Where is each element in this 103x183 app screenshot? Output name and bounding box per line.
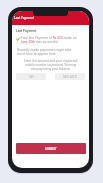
staticText: PAY LATER: [63, 75, 77, 79]
staticText: mobile number to proceed. You may: [25, 63, 77, 67]
button[interactable]: SUBMIT: [16, 143, 86, 154]
staticText: Your last Payment of Rs.450 made on: [21, 36, 77, 40]
staticText: Last Payment: [16, 29, 37, 33]
staticText: Recently made payments might take: [17, 48, 72, 52]
button[interactable]: Last Payment: [12, 11, 89, 25]
staticText: Enter the amount and your registered: [24, 59, 78, 63]
staticText: June 20th was successful: [21, 40, 58, 44]
staticText: Last Payment: [14, 16, 35, 20]
staticText: also pay using your balance: [31, 67, 71, 71]
button[interactable]: PAY LATER: [55, 73, 85, 80]
staticText: PAY: [29, 75, 34, 79]
button[interactable]: PAY: [16, 73, 46, 80]
staticText: some time to appear here: [17, 52, 56, 56]
staticText: SUBMIT: [45, 147, 57, 151]
